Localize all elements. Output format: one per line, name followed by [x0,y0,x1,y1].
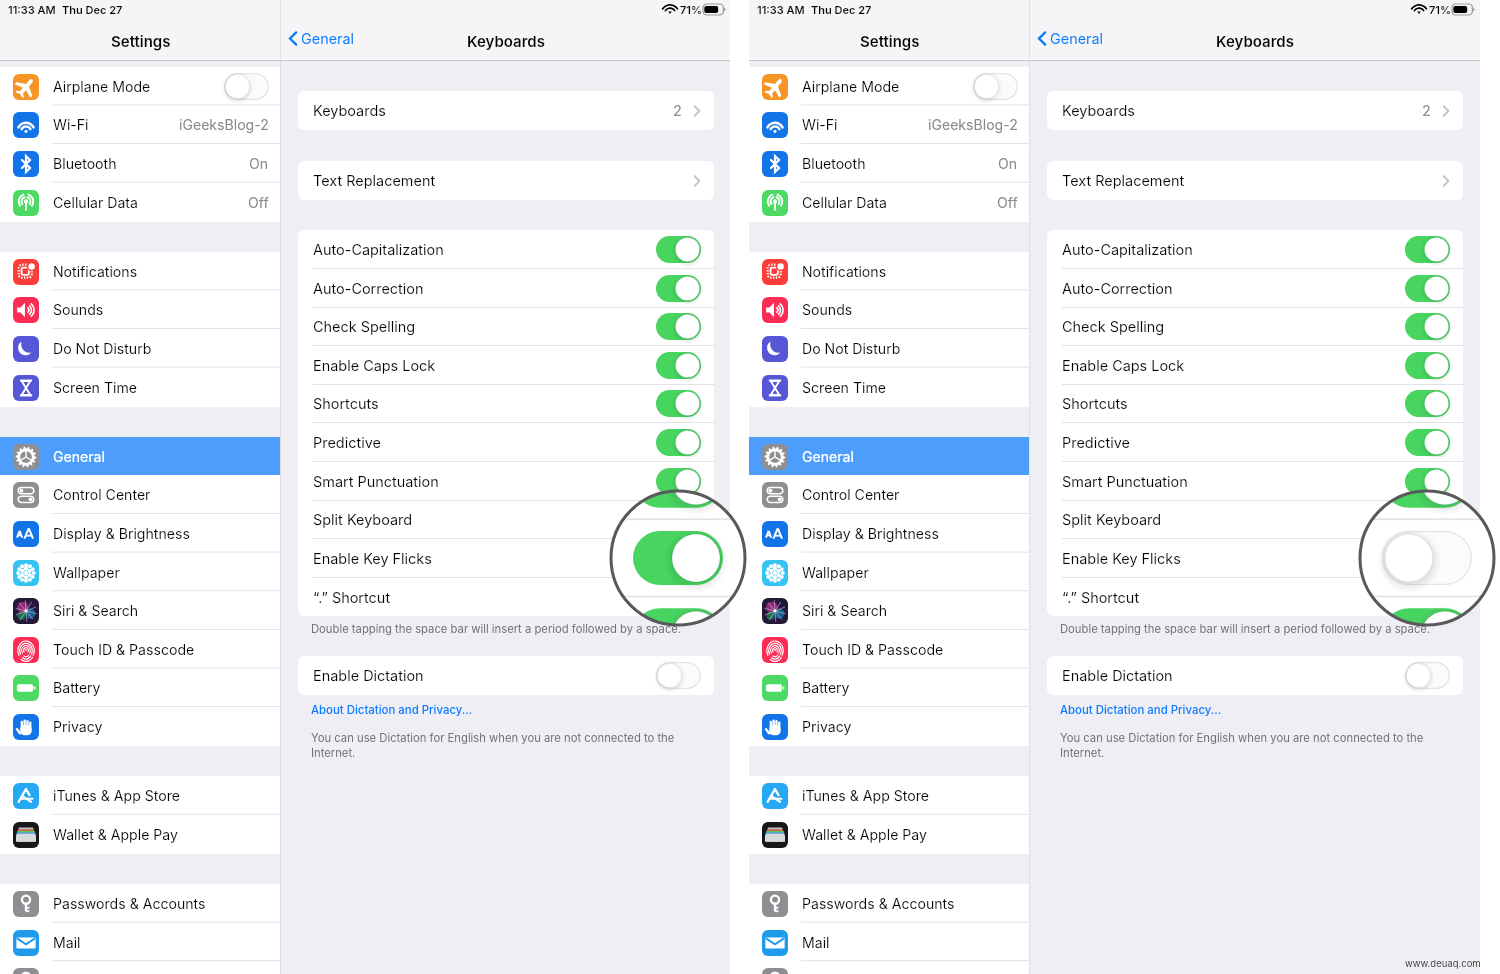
button[interactable]: Bluetooth [749,144,1030,183]
button[interactable]: Text Replacement [1047,161,1463,200]
staticText: Wi-Fi [53,116,179,133]
button[interactable]: Toggle on [1405,545,1450,572]
button[interactable]: Contacts [749,961,1030,974]
button[interactable]: Shortcuts [1047,384,1463,423]
button[interactable]: About Dictation and Privacy... [311,703,473,717]
button[interactable]: Toggle on [1405,506,1450,533]
button[interactable]: Auto-Capitalization [1047,230,1463,269]
button[interactable]: Passwords & Accounts [749,884,1030,923]
button[interactable]: Control Center [749,475,1030,514]
button[interactable]: Toggle on [656,468,701,495]
button[interactable]: About Dictation and Privacy... [1060,703,1222,717]
button[interactable]: Toggle on [1405,468,1450,495]
button[interactable]: Split Keyboard [298,500,714,539]
button[interactable]: “.” Shortcut [1047,578,1463,616]
button[interactable]: Toggle on [1405,313,1450,340]
button[interactable]: Siri & Search [0,591,281,630]
button[interactable]: Notifications [0,252,281,291]
button[interactable]: Auto-Capitalization [298,230,714,269]
button[interactable]: Predictive [298,423,714,462]
button[interactable]: Screen Time [0,368,281,407]
button[interactable]: Enable Key Flicks [1047,539,1463,578]
button[interactable]: Toggle on [1405,275,1450,302]
button[interactable]: Toggle off [656,662,701,689]
button[interactable]: Check Spelling [1047,307,1463,346]
button[interactable]: Airplane Mode [749,67,1030,106]
button[interactable]: Enable Key Flicks [298,539,714,578]
button[interactable]: Toggle on [656,236,701,263]
button[interactable]: Smart Punctuation [298,462,714,501]
button[interactable]: Mail [749,923,1030,962]
button[interactable]: Enable Dictation [298,656,714,695]
button[interactable]: Toggle off [973,73,1018,100]
button[interactable]: Smart Punctuation [1047,462,1463,501]
button[interactable]: Sounds [0,290,281,329]
button[interactable]: Control Center [0,475,281,514]
button[interactable]: Toggle on [656,352,701,379]
button[interactable]: Toggle on [1405,390,1450,417]
button[interactable]: Shortcuts [298,384,714,423]
button[interactable]: General [749,437,1030,476]
button[interactable]: iTunes & App Store [0,776,281,815]
button[interactable]: General [1037,30,1104,47]
button[interactable]: Battery [749,668,1030,707]
button[interactable]: Wallpaper [0,553,281,592]
button[interactable]: Cellular Data [749,183,1030,222]
button[interactable]: General [0,437,281,476]
button[interactable]: Wallet & Apple Pay [749,815,1030,854]
button[interactable]: Split Keyboard [1047,500,1463,539]
button[interactable]: Privacy [749,707,1030,746]
button[interactable]: Battery [0,668,281,707]
button[interactable]: Auto-Correction [298,269,714,308]
button[interactable]: Privacy [0,707,281,746]
button[interactable]: Toggle on [656,584,701,611]
button[interactable]: Toggle on [1405,236,1450,263]
button[interactable]: “.” Shortcut [298,578,714,616]
button[interactable]: Touch ID & Passcode [749,630,1030,669]
button[interactable]: Keyboards [298,91,714,130]
button[interactable]: Do Not Disturb [749,329,1030,368]
button[interactable]: Toggle off [224,73,269,100]
button[interactable]: Toggle on [1405,429,1450,456]
button[interactable]: Enable Caps Lock [1047,346,1463,385]
button[interactable]: Keyboards [1047,91,1463,130]
button[interactable]: Toggle on [656,429,701,456]
staticText: Cellular Data [802,194,997,211]
button[interactable]: Wallpaper [749,553,1030,592]
button[interactable]: Predictive [1047,423,1463,462]
button[interactable]: Enable Dictation [1047,656,1463,695]
button[interactable]: Check Spelling [298,307,714,346]
button[interactable]: Text Replacement [298,161,714,200]
staticText: Wallet & Apple Pay [802,826,1018,843]
button[interactable]: Cellular Data [0,183,281,222]
button[interactable]: Toggle on [656,390,701,417]
button[interactable]: Toggle on [656,545,701,572]
button[interactable]: Siri & Search [749,591,1030,630]
button[interactable]: Mail [0,923,281,962]
button[interactable]: Toggle on [656,506,701,533]
button[interactable]: General [288,30,355,47]
button[interactable]: Toggle on [656,313,701,340]
button[interactable]: Sounds [749,290,1030,329]
button[interactable]: Notifications [749,252,1030,291]
button[interactable]: Screen Time [749,368,1030,407]
button[interactable]: Display & Brightness [749,514,1030,553]
button[interactable]: Toggle on [1405,352,1450,379]
button[interactable]: Do Not Disturb [0,329,281,368]
button[interactable]: Auto-Correction [1047,269,1463,308]
button[interactable]: Toggle on [1405,584,1450,611]
button[interactable]: Contacts [0,961,281,974]
button[interactable]: Passwords & Accounts [0,884,281,923]
button[interactable]: Toggle off [1405,662,1450,689]
button[interactable]: Display & Brightness [0,514,281,553]
button[interactable]: Toggle on [656,275,701,302]
button[interactable]: Wi-Fi [0,105,281,144]
button[interactable]: Wi-Fi [749,105,1030,144]
button[interactable]: Touch ID & Passcode [0,630,281,669]
button[interactable]: Airplane Mode [0,67,281,106]
button[interactable]: Enable Caps Lock [298,346,714,385]
button[interactable]: Bluetooth [0,144,281,183]
button[interactable]: Wallet & Apple Pay [0,815,281,854]
button[interactable]: iTunes & App Store [749,776,1030,815]
